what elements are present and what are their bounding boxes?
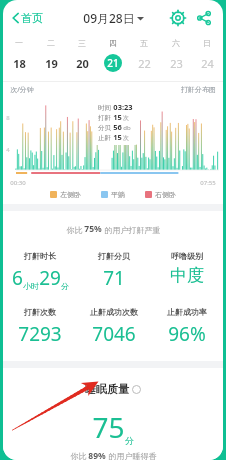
staticText: 分贝 xyxy=(98,124,111,132)
staticText: 6 xyxy=(12,265,23,291)
staticText: 96% xyxy=(168,321,206,347)
button[interactable]: 止鼾成功次数 xyxy=(77,305,150,349)
staticText: 中度 xyxy=(170,265,204,286)
staticText: 次/分钟 xyxy=(10,85,34,95)
button[interactable]: 呼噜级别 xyxy=(150,249,223,288)
staticText: 次 xyxy=(123,114,129,122)
staticText: 7293 xyxy=(18,321,62,347)
button[interactable]: 打鼾分贝 xyxy=(77,249,150,293)
staticText: 五 xyxy=(140,38,148,48)
staticText: 15 xyxy=(113,112,122,122)
button[interactable]: 19 xyxy=(36,53,66,73)
staticText: 75 xyxy=(92,408,125,446)
staticText: 23 xyxy=(170,56,183,71)
button[interactable]: 睡眠质量 xyxy=(85,382,141,396)
staticText: 24 xyxy=(201,56,214,71)
staticText: 你比 xyxy=(65,224,84,235)
staticText: 29 xyxy=(39,265,61,291)
staticText: 的用户睡得香 xyxy=(106,450,157,460)
staticText: 20 xyxy=(76,56,89,71)
staticText: 09月28日 xyxy=(83,10,135,26)
staticText: 00:30 xyxy=(10,179,26,187)
button[interactable]: 首页 xyxy=(9,7,45,29)
staticText: 22 xyxy=(138,56,151,71)
staticText: 分 xyxy=(61,281,69,291)
button[interactable]: 21 xyxy=(98,53,128,73)
staticText: 89% xyxy=(88,450,106,460)
staticText: 二 xyxy=(47,38,55,48)
button[interactable]: 打鼾时长 xyxy=(3,249,77,293)
button[interactable]: 左侧卧 xyxy=(50,190,81,199)
staticText: 打鼾分贝 xyxy=(98,251,130,261)
staticText: 的用户打鼾严重 xyxy=(102,224,161,235)
staticText: 75% xyxy=(84,223,102,235)
button[interactable]: 23 xyxy=(161,53,191,73)
staticText: 六 xyxy=(172,38,180,48)
staticText: 07:55 xyxy=(200,179,216,187)
staticText: 打鼾 xyxy=(98,114,111,122)
staticText: 一 xyxy=(15,38,23,48)
staticText: 呼噜级别 xyxy=(171,251,203,261)
staticText: 止鼾成功率 xyxy=(167,307,207,317)
staticText: 首页 xyxy=(21,11,43,25)
button[interactable]: 09月28日 xyxy=(83,10,144,26)
button[interactable]: 24 xyxy=(192,53,222,73)
staticText: 时间 xyxy=(98,104,111,112)
button[interactable]: 打鼾次数 xyxy=(3,305,77,349)
staticText: 18 xyxy=(13,56,26,71)
staticText: 打鼾时长 xyxy=(24,251,56,261)
staticText: 三 xyxy=(78,38,86,48)
staticText: 8 xyxy=(6,114,10,122)
button[interactable]: 止鼾成功率 xyxy=(150,305,223,349)
staticText: 7046 xyxy=(92,321,136,347)
staticText: 小时 xyxy=(23,281,39,291)
button[interactable]: Share xyxy=(193,7,215,29)
button[interactable]: 右侧卧 xyxy=(145,190,176,199)
staticText: 日 xyxy=(203,38,211,48)
staticText: 03:23 xyxy=(113,102,133,112)
button[interactable]: 18 xyxy=(4,53,34,73)
staticText: 71 xyxy=(103,265,125,291)
staticText: 右侧卧 xyxy=(155,190,176,199)
staticText: 你比 xyxy=(69,450,88,460)
button[interactable]: 22 xyxy=(129,53,159,73)
staticText: 19 xyxy=(45,56,58,71)
staticText: 左侧卧 xyxy=(60,190,81,199)
staticText: 打鼾次数 xyxy=(24,307,56,317)
staticText: 打鼾分布图 xyxy=(181,85,216,94)
staticText: 次 xyxy=(123,134,129,142)
staticText: 平躺 xyxy=(111,190,125,199)
staticText: 56 xyxy=(113,122,122,132)
button[interactable]: 平躺 xyxy=(101,190,125,199)
staticText: 4 xyxy=(6,146,10,154)
staticText: 四 xyxy=(109,38,117,48)
staticText: 21 xyxy=(107,56,119,70)
staticText: 睡眠质量 xyxy=(85,382,129,396)
button[interactable]: Settings xyxy=(167,7,189,29)
staticText: 15 xyxy=(113,132,122,142)
staticText: 分 xyxy=(125,435,134,446)
button[interactable]: 20 xyxy=(67,53,97,73)
staticText: 止鼾 xyxy=(98,134,111,142)
staticText: 止鼾成功次数 xyxy=(90,307,138,317)
staticText: db xyxy=(123,124,131,132)
